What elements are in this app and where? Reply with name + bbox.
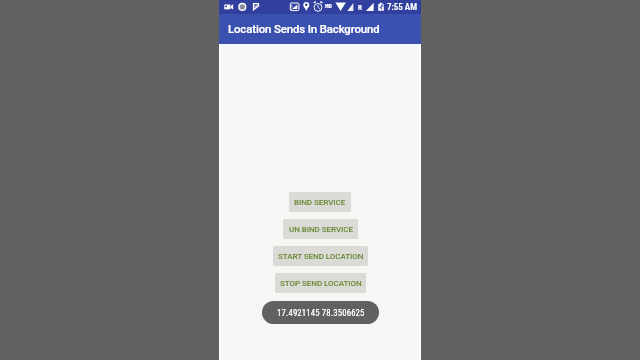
staticText: START SEND LOCATION [278, 251, 364, 260]
staticText: 7:55 AM [387, 2, 417, 13]
staticText: STOP SEND LOCATION [280, 278, 362, 287]
staticText: BIND SERVICE [294, 197, 346, 206]
button[interactable]: 17.4921145 78.3506625 [262, 301, 379, 324]
staticText: HD [325, 3, 332, 10]
staticText: 17.4921145 78.3506625 [277, 308, 365, 318]
other: Status bar icons [219, 0, 421, 14]
button[interactable]: BIND SERVICE [289, 192, 351, 212]
staticText: R [358, 3, 362, 11]
button[interactable]: START SEND LOCATION [273, 246, 368, 266]
button[interactable]: UN BIND SERVICE [283, 219, 358, 239]
staticText: UN BIND SERVICE [289, 224, 353, 233]
button[interactable]: STOP SEND LOCATION [275, 273, 366, 293]
staticText: Location Sends In Background [228, 22, 380, 35]
